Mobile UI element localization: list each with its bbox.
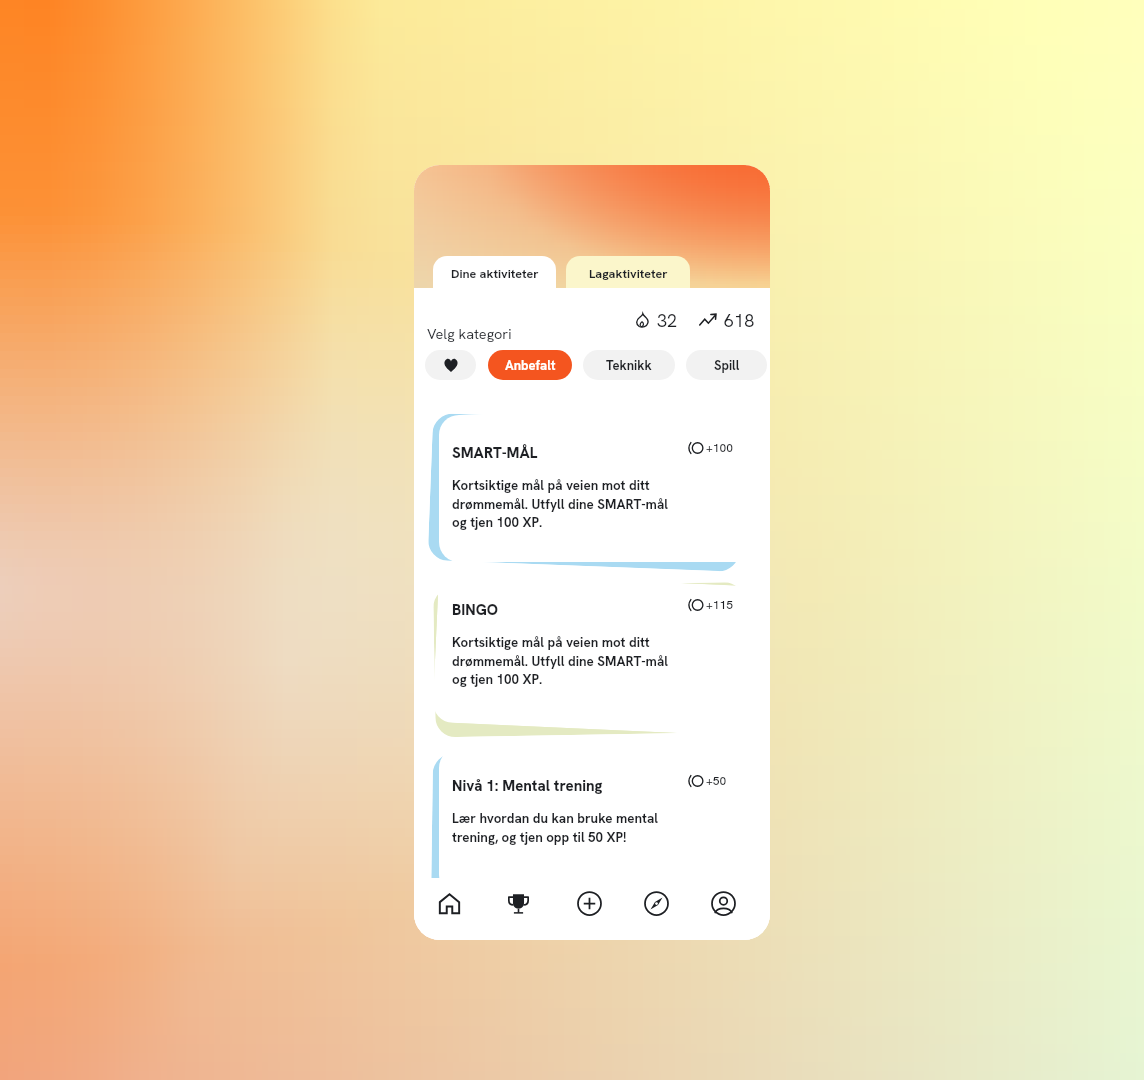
staticText: Anbefalt: [505, 357, 556, 374]
staticText: 618: [724, 309, 755, 332]
staticText: Lær hvordan du kan bruke mental trening,…: [452, 810, 659, 846]
staticText: +115: [706, 597, 733, 613]
staticText: +50: [706, 773, 727, 789]
button[interactable]: Teknikk: [583, 350, 675, 380]
button[interactable]: Anbefalt: [488, 350, 572, 380]
staticText: Nivå 1: Mental trening: [452, 776, 603, 796]
staticText: Lagaktiviteter: [589, 265, 668, 281]
staticText: Teknikk: [606, 357, 652, 374]
staticText: Velg kategori: [427, 324, 512, 343]
button[interactable]: Nivå 1: Mental trening: [439, 748, 758, 895]
button[interactable]: Achievements: [496, 881, 540, 925]
button[interactable]: Add: [567, 881, 611, 925]
button[interactable]: Dine aktiviteter: [433, 256, 556, 289]
staticText: SMART-MÅL: [452, 443, 538, 463]
staticText: Spill: [714, 357, 740, 374]
button[interactable]: BINGO: [439, 572, 758, 722]
staticText: 32: [657, 309, 678, 332]
button[interactable]: SMART-MÅL: [439, 415, 758, 562]
staticText: +100: [706, 440, 733, 456]
staticText: Kortsiktige mål på veien mot ditt drømme…: [452, 634, 668, 688]
button[interactable]: Home: [427, 881, 471, 925]
button[interactable]: Lagaktiviteter: [566, 256, 690, 289]
button[interactable]: Profile: [701, 881, 745, 925]
button[interactable]: Explore: [634, 881, 678, 925]
staticText: BINGO: [452, 600, 498, 620]
button[interactable]: Favorites: [425, 350, 476, 380]
staticText: Dine aktiviteter: [451, 265, 539, 281]
button[interactable]: Spill: [686, 350, 767, 380]
staticText: Kortsiktige mål på veien mot ditt drømme…: [452, 477, 668, 531]
